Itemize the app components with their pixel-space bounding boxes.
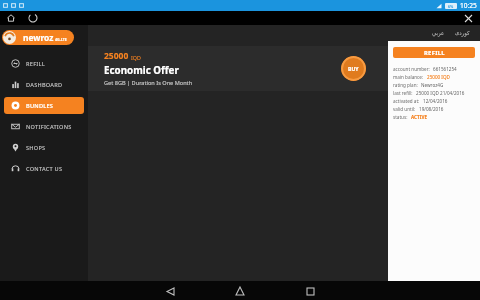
button[interactable]: Newroz 4G LTE	[2, 30, 74, 45]
staticText: DASHBOARD	[26, 81, 63, 89]
staticText: 4G-LTE	[55, 37, 67, 42]
staticText: Economic Offer	[104, 64, 179, 77]
button[interactable]: Home	[232, 283, 248, 299]
staticText: 19/08/2016	[419, 106, 444, 112]
button[interactable]: کوردی	[450, 28, 475, 38]
button[interactable]: Home	[5, 12, 17, 24]
staticText: valid until:	[393, 106, 416, 112]
staticText: NOTIFICATIONS	[26, 123, 72, 131]
staticText: Get 8GB | Duration Is One Month	[104, 79, 193, 87]
staticText: main balance:	[393, 74, 424, 80]
staticText: REFILL	[424, 49, 445, 57]
staticText: عربي	[432, 30, 445, 36]
button[interactable]: NOTIFICATIONS	[4, 118, 84, 135]
staticText: rating plan:	[393, 82, 418, 88]
button[interactable]: REFILL	[393, 47, 475, 58]
staticText: newroz	[23, 32, 54, 43]
button[interactable]: DASHBOARD	[4, 76, 84, 93]
staticText: 661561254	[433, 66, 457, 72]
button[interactable]: BUNDLES	[4, 97, 84, 114]
staticText: activated at:	[393, 98, 420, 104]
staticText: 6%	[448, 4, 454, 9]
button[interactable]: Close	[462, 12, 474, 24]
staticText: 10:25	[460, 1, 477, 10]
staticText: 25000 IQD 21/04/2016	[416, 90, 465, 96]
staticText: 12/04/2016	[423, 98, 448, 104]
button[interactable]: عربي	[427, 28, 450, 38]
staticText: IQD	[131, 54, 141, 61]
button[interactable]: REFILL	[4, 55, 84, 72]
staticText: کوردی	[455, 30, 470, 36]
staticText: REFILL	[26, 60, 46, 68]
button[interactable]: 25000	[88, 46, 388, 91]
staticText: BUNDLES	[26, 102, 54, 110]
button[interactable]: SHOPS	[4, 139, 84, 156]
staticText: account number:	[393, 66, 430, 72]
button[interactable]: Back	[162, 283, 178, 299]
staticText: BUY	[348, 65, 359, 72]
staticText: CONTACT US	[26, 165, 63, 173]
staticText: status:	[393, 114, 408, 120]
button[interactable]: BUY	[341, 56, 366, 81]
button[interactable]: CONTACT US	[4, 160, 84, 177]
staticText: 25000 IQD	[427, 74, 450, 80]
button[interactable]: Reload	[27, 12, 39, 24]
staticText: last refill:	[393, 90, 413, 96]
staticText: SHOPS	[26, 144, 46, 152]
staticText: Newroz4G	[421, 82, 444, 88]
staticText: 25000	[104, 50, 129, 62]
staticText: ACTIVE	[411, 114, 428, 120]
button[interactable]: Recent apps	[302, 283, 318, 299]
